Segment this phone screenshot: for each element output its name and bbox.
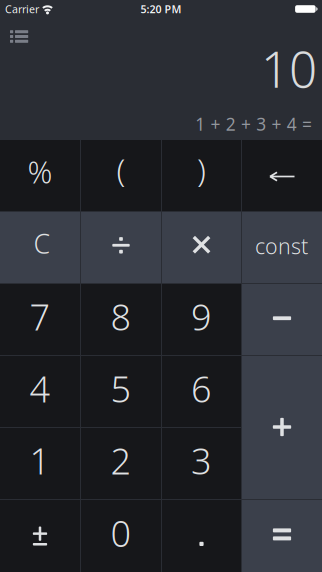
button[interactable]: 7 <box>0 284 80 355</box>
button[interactable]: Divide <box>81 212 161 283</box>
staticText: C <box>33 226 50 261</box>
button[interactable]: const <box>242 212 322 283</box>
button[interactable]: 4 <box>0 356 80 427</box>
staticText: 6 <box>191 365 212 412</box>
staticText: Carrier <box>5 2 39 16</box>
button[interactable]: ) <box>162 140 241 211</box>
button[interactable]: 2 <box>81 428 161 499</box>
staticText: 9 <box>191 293 212 340</box>
button[interactable]: 5 <box>81 356 161 427</box>
staticText: 5 <box>110 365 131 412</box>
button[interactable]: History <box>0 18 28 43</box>
button[interactable]: Delete <box>242 140 322 211</box>
staticText: 4 <box>29 365 50 412</box>
staticText: 2 <box>110 437 131 484</box>
button[interactable]: 9 <box>162 284 241 355</box>
button[interactable]: 6 <box>162 356 241 427</box>
button[interactable]: Plus minus <box>0 500 80 572</box>
button[interactable]: Equals <box>242 500 322 572</box>
button[interactable]: % <box>0 140 80 211</box>
staticText: 0 <box>110 509 131 557</box>
staticText: 5:20 PM <box>140 2 181 16</box>
staticText: 3 <box>191 437 212 484</box>
button[interactable]: 0 <box>81 500 161 572</box>
staticText: ( <box>116 148 125 190</box>
button[interactable]: Plus <box>242 356 322 499</box>
staticText: 1 <box>29 437 50 484</box>
staticText: 10 <box>261 36 317 101</box>
staticText: 8 <box>110 293 131 340</box>
staticText: % <box>27 151 52 192</box>
staticText: 7 <box>29 293 50 340</box>
button[interactable]: 8 <box>81 284 161 355</box>
button[interactable]: Multiply <box>162 212 241 283</box>
button[interactable]: Decimal point <box>162 500 241 572</box>
button[interactable]: Minus <box>242 284 322 355</box>
button[interactable]: C <box>0 212 80 283</box>
staticText: const <box>255 232 308 260</box>
staticText: 1 + 2 + 3 + 4 = <box>195 112 312 135</box>
button[interactable]: 1 <box>0 428 80 499</box>
button[interactable]: ( <box>81 140 161 211</box>
staticText: ) <box>197 148 206 190</box>
button[interactable]: 3 <box>162 428 241 499</box>
